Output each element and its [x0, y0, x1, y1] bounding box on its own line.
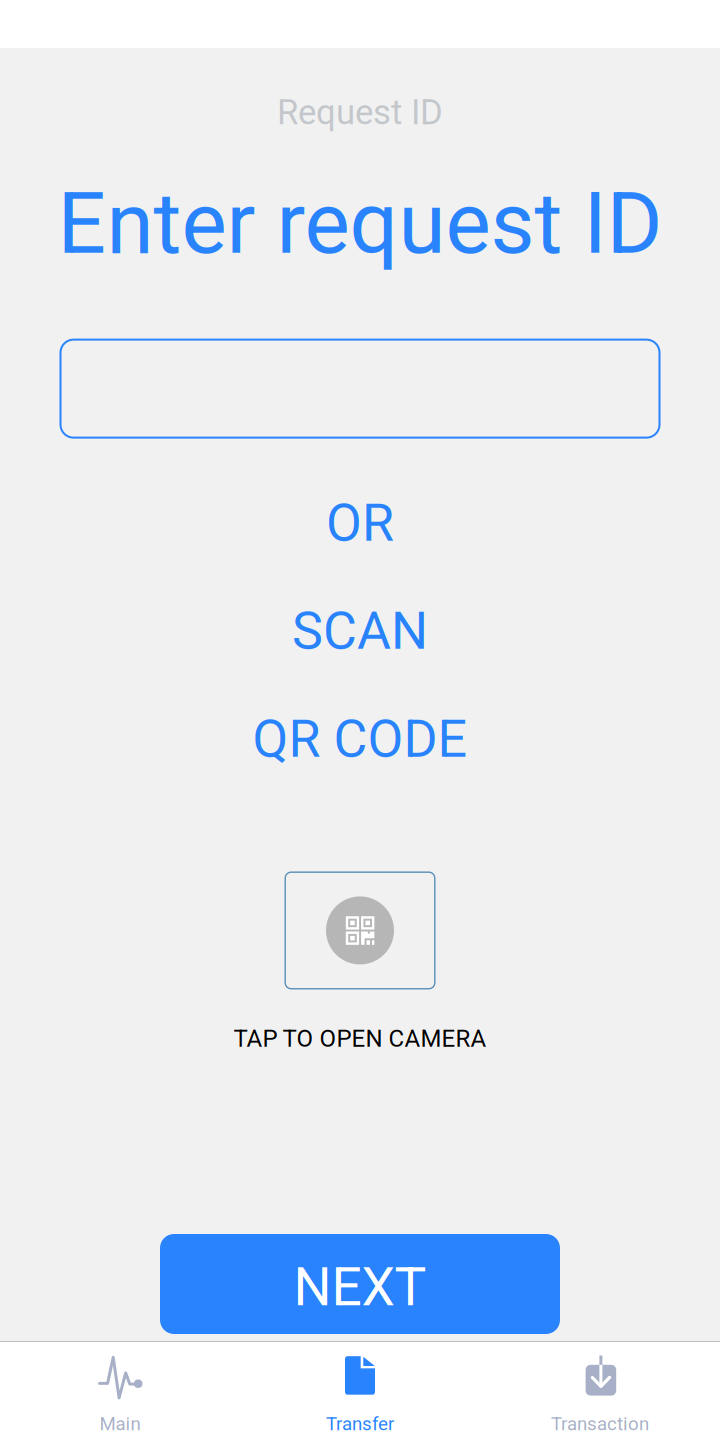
- staticText: Request ID: [277, 92, 443, 133]
- staticText: QR CODE: [252, 708, 467, 769]
- button[interactable]: TAP TO OPEN CAMERA: [233, 871, 486, 1052]
- staticText: Transaction: [551, 1413, 649, 1435]
- staticText: SCAN: [292, 601, 428, 661]
- staticText: TAP TO OPEN CAMERA: [233, 1024, 486, 1052]
- button[interactable]: Transaction: [480, 1342, 720, 1440]
- button[interactable]: NEXT: [160, 1234, 560, 1334]
- staticText: Transfer: [326, 1413, 394, 1435]
- button[interactable]: Transfer: [240, 1342, 480, 1440]
- staticText: NEXT: [293, 1256, 426, 1318]
- staticText: Enter request ID: [57, 174, 662, 274]
- staticText: OR: [326, 493, 394, 553]
- staticText: Main: [99, 1413, 140, 1435]
- button[interactable]: Main: [0, 1342, 240, 1440]
